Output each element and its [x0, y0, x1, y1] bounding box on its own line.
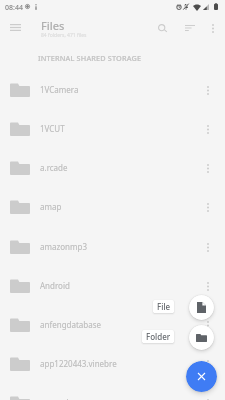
button[interactable]: More options — [200, 15, 225, 41]
button[interactable]: File — [153, 300, 174, 313]
button[interactable]: Search — [149, 15, 175, 41]
button[interactable]: Folder — [189, 325, 214, 350]
staticText: amazonmp3 — [40, 241, 87, 252]
button[interactable]: Item options — [196, 156, 220, 180]
staticText: a.rcade — [40, 162, 68, 173]
staticText: 1VCamera — [40, 84, 79, 95]
button[interactable]: Menu — [1, 13, 29, 41]
button[interactable]: 1VCamera — [0, 70, 225, 109]
staticText: 08:44 — [5, 3, 23, 13]
button[interactable]: Android — [0, 266, 225, 305]
button[interactable]: Item options — [196, 391, 220, 400]
button[interactable]: Close menu — [186, 361, 217, 392]
button[interactable]: a.rcade — [0, 148, 225, 187]
staticText: 84 folders, 471 files — [41, 32, 87, 39]
button[interactable]: File — [189, 295, 214, 320]
button[interactable]: Item options — [196, 313, 220, 337]
button[interactable]: Item options — [196, 274, 220, 298]
button[interactable]: amap — [0, 187, 225, 226]
button[interactable]: anfengdatabase — [0, 305, 225, 344]
staticText: File — [157, 301, 171, 312]
button[interactable]: appcache — [0, 383, 225, 400]
staticText: Android — [40, 280, 70, 291]
button[interactable]: amazonmp3 — [0, 227, 225, 266]
button[interactable]: Item options — [196, 352, 220, 376]
staticText: INTERNAL SHARED STORAGE — [38, 53, 142, 63]
staticText: Folder — [146, 331, 171, 342]
button[interactable]: Folder — [142, 330, 174, 343]
staticText: anfengdatabase — [40, 319, 102, 330]
button[interactable]: Item options — [196, 235, 220, 259]
button[interactable]: Item options — [196, 78, 220, 102]
staticText: app1220443.vinebre — [40, 358, 117, 369]
button[interactable]: app1220443.vinebre — [0, 344, 225, 383]
button[interactable]: Item options — [196, 117, 220, 141]
staticText: appcache — [40, 397, 76, 400]
button[interactable]: Item options — [196, 195, 220, 219]
staticText: amap — [40, 201, 62, 212]
button[interactable]: 1VCUT — [0, 109, 225, 148]
staticText: 1VCUT — [40, 123, 65, 134]
staticText: Files — [41, 18, 65, 33]
button[interactable]: Sort — [177, 15, 203, 41]
